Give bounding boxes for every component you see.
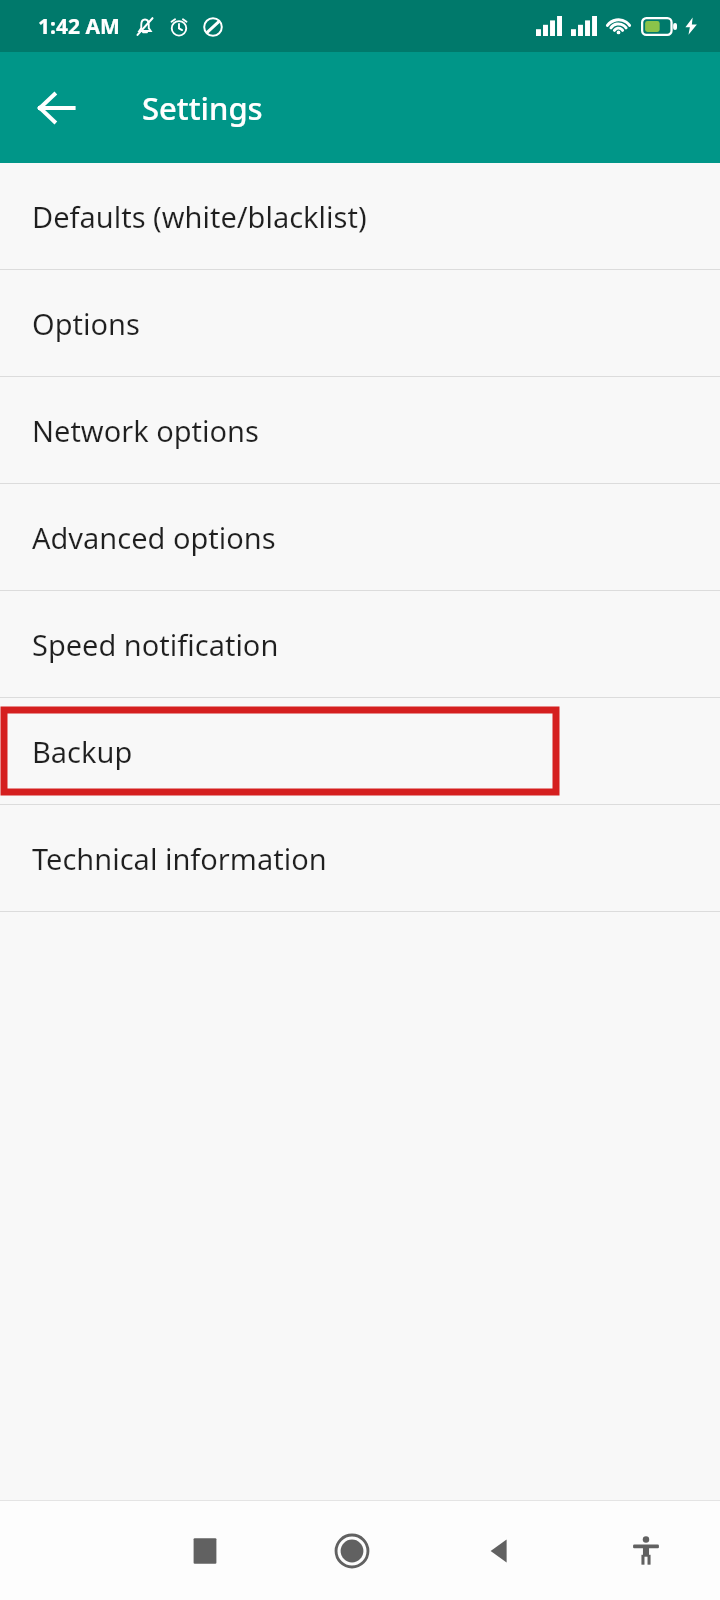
button[interactable]: Back [454,1506,544,1596]
staticText: Speed notification [32,625,279,664]
button[interactable]: Home [307,1506,397,1596]
button[interactable]: Technical information [0,805,720,911]
button[interactable]: Back [18,70,94,146]
button[interactable]: Network options [0,377,720,483]
button[interactable]: Accessibility [601,1506,691,1596]
button[interactable]: Options [0,270,720,376]
staticText: Settings [142,87,263,129]
staticText: Technical information [32,839,327,878]
button[interactable]: Speed notification [0,591,720,697]
staticText: Options [32,304,140,343]
button[interactable]: Defaults (white/blacklist) [0,163,720,269]
staticText: 1:42 AM [38,12,120,41]
staticText: Advanced options [32,518,276,557]
button[interactable]: Recent apps [160,1506,250,1596]
button[interactable]: Backup [0,698,720,804]
button[interactable]: Advanced options [0,484,720,590]
staticText: Backup [32,732,133,771]
staticText: Defaults (white/blacklist) [32,197,367,236]
staticText: Network options [32,411,259,450]
